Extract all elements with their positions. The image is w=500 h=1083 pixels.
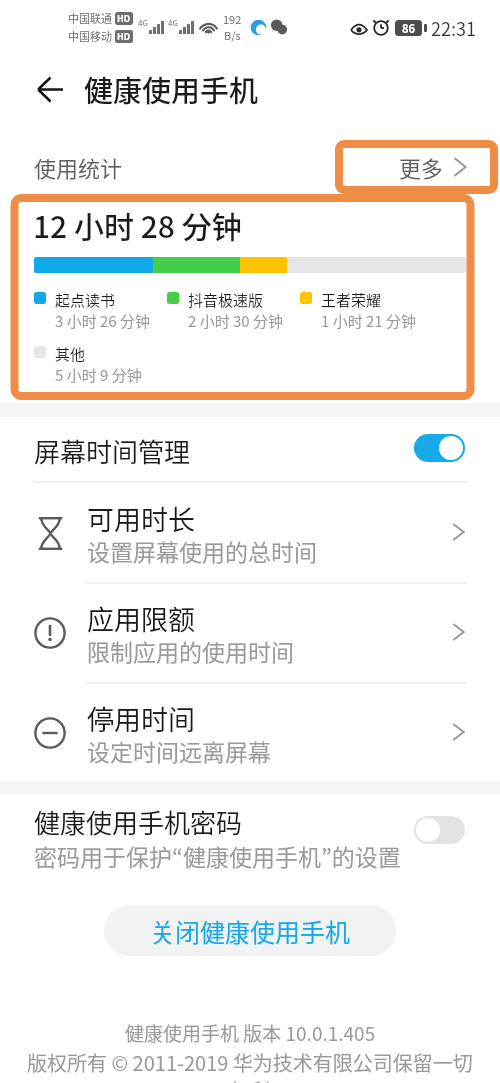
staticText: 2 小时 30 分钟 [188, 310, 284, 332]
staticText: 起点读书 [55, 289, 116, 311]
staticText: 应用限额 [87, 599, 195, 638]
button[interactable]: Back [27, 66, 73, 112]
staticText: 王者荣耀 [321, 289, 382, 311]
staticText: 4G [168, 17, 178, 29]
staticText: 使用统计 [34, 151, 123, 183]
staticText: 12 小时 28 分钟 [33, 203, 242, 246]
staticText: 权利 [230, 1076, 270, 1083]
staticText: 停用时间 [87, 699, 195, 738]
staticText: 中国联通 [68, 10, 112, 26]
staticText: 1 小时 21 分钟 [321, 310, 417, 332]
staticText: 关闭健康使用手机 [150, 913, 351, 949]
staticText: 其他 [55, 343, 86, 365]
staticText: 版权所有 © 2011-2019 华为技术有限公司保留一切 [27, 1048, 473, 1077]
staticText: 屏幕时间管理 [34, 432, 191, 470]
staticText: 限制应用的使用时间 [87, 634, 294, 667]
button[interactable]: 可用时长 [0, 483, 500, 582]
button[interactable]: Screen time management toggle [401, 425, 477, 471]
button[interactable]: 健康使用手机密码 [0, 794, 500, 884]
staticText: 设定时间远离屏幕 [87, 734, 271, 767]
staticText: 健康使用手机 版本 10.0.1.405 [125, 1019, 376, 1047]
staticText: B/s [224, 27, 241, 43]
staticText: 健康使用手机 [84, 68, 259, 110]
staticText: 5 小时 9 分钟 [55, 364, 142, 386]
staticText: HD [117, 12, 131, 25]
staticText: HD [117, 30, 131, 43]
staticText: 4G [138, 17, 148, 29]
staticText: 192 [223, 11, 242, 27]
button[interactable]: 停用时间 [0, 683, 500, 782]
button[interactable]: 关闭健康使用手机 [104, 905, 396, 956]
staticText: 密码用于保护“健康使用手机”的设置 [34, 839, 401, 872]
staticText: 抖音极速版 [188, 289, 264, 311]
staticText: 22:31 [431, 15, 476, 41]
button[interactable]: 应用限额 [0, 583, 500, 682]
staticText: 设置屏幕使用的总时间 [87, 534, 317, 567]
staticText: 3 小时 26 分钟 [55, 310, 151, 332]
button[interactable]: Password toggle [401, 807, 477, 853]
staticText: 更多 [399, 151, 444, 183]
staticText: 可用时长 [87, 499, 195, 538]
button[interactable]: 更多 [399, 150, 467, 184]
staticText: 健康使用手机密码 [34, 803, 243, 841]
staticText: 中国移动 [68, 28, 112, 44]
staticText: 86 [402, 20, 415, 36]
